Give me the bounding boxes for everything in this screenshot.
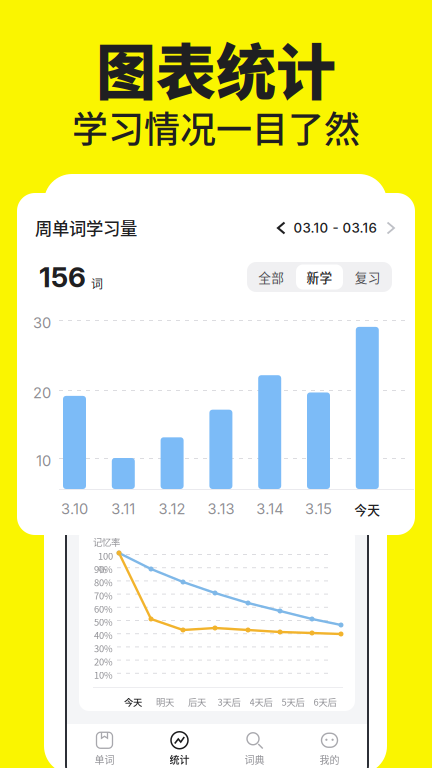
staticText: 复习	[355, 268, 381, 286]
staticText: 3.11	[111, 500, 135, 518]
staticText: 100%	[98, 549, 113, 576]
staticText: 学习情况一目了然	[72, 101, 360, 153]
staticText: 70%	[94, 589, 113, 602]
staticText: 80%	[94, 575, 113, 589]
staticText: 3.14	[256, 500, 283, 518]
staticText: 40%	[94, 628, 113, 642]
staticText: 今天	[354, 500, 380, 518]
staticText: 图表统计	[96, 25, 336, 112]
staticText: 记忆率	[93, 535, 120, 548]
button[interactable]: 03.10 - 03.16	[278, 217, 394, 239]
staticText: 03.10 - 03.16	[293, 220, 376, 236]
staticText: 统计	[169, 752, 189, 767]
staticText: 20%	[94, 655, 113, 668]
staticText: 10	[36, 452, 51, 470]
staticText: 3.10	[61, 500, 88, 518]
staticText: 156	[39, 260, 86, 294]
staticText: 后天	[188, 695, 206, 708]
staticText: 30	[33, 314, 51, 332]
staticText: 单词	[94, 752, 114, 767]
staticText: 10%	[94, 668, 113, 681]
staticText: 词典	[244, 752, 264, 767]
staticText: 90%	[94, 562, 113, 576]
staticText: 新学	[306, 268, 332, 286]
button[interactable]: 统计	[142, 725, 217, 768]
staticText: 3天后	[217, 695, 240, 708]
button[interactable]: 全部	[247, 262, 295, 292]
staticText: 60%	[94, 602, 113, 615]
staticText: 全部	[258, 268, 284, 286]
staticText: 20	[33, 384, 51, 402]
staticText: 5天后	[281, 695, 304, 708]
button[interactable]: 新学	[295, 262, 344, 292]
button[interactable]: 词典	[217, 725, 292, 768]
staticText: 50%	[94, 615, 113, 628]
staticText: 我的	[319, 752, 339, 767]
button[interactable]: 复习	[344, 262, 392, 292]
staticText: 词	[91, 274, 103, 292]
staticText: 3.15	[305, 500, 332, 518]
staticText: 今天	[124, 695, 142, 708]
staticText: 3.13	[207, 500, 234, 518]
staticText: 周单词学习量	[35, 215, 137, 240]
staticText: 30%	[94, 641, 113, 655]
staticText: 4天后	[249, 695, 272, 708]
staticText: 明天	[156, 695, 174, 708]
button[interactable]: 单词	[67, 725, 142, 768]
button[interactable]: 我的	[292, 725, 367, 768]
staticText: 6天后	[313, 695, 336, 708]
staticText: 3.12	[159, 500, 186, 518]
